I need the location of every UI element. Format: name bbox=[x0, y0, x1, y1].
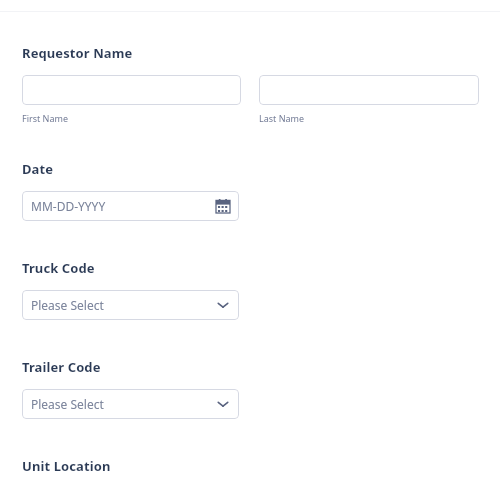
button[interactable]: MM-DD-YYYY bbox=[22, 191, 239, 221]
staticText: Requestor Name bbox=[22, 44, 133, 62]
other: Pick date bbox=[216, 199, 230, 213]
button[interactable]: Please Select bbox=[22, 290, 239, 320]
button[interactable]: Please Select bbox=[22, 389, 239, 419]
staticText: First Name bbox=[22, 112, 68, 124]
staticText: Last Name bbox=[259, 112, 305, 124]
staticText: Unit Location bbox=[22, 457, 111, 475]
staticText: Please Select bbox=[31, 297, 104, 313]
other: Open dropdown bbox=[216, 298, 230, 312]
other: Open dropdown bbox=[216, 397, 230, 411]
staticText: Trailer Code bbox=[22, 358, 101, 376]
button[interactable] bbox=[259, 75, 479, 105]
staticText: Date bbox=[22, 160, 54, 178]
staticText: MM-DD-YYYY bbox=[31, 198, 106, 214]
staticText: Truck Code bbox=[22, 259, 95, 277]
staticText: Please Select bbox=[31, 396, 104, 412]
button[interactable] bbox=[22, 75, 241, 105]
